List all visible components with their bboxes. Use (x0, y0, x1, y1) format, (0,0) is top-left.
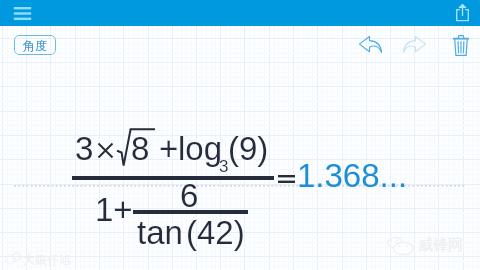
staticText: (9) (228, 130, 269, 167)
button[interactable]: Delete (453, 35, 469, 56)
staticText: 6 (180, 177, 199, 214)
staticText: 3 (219, 157, 229, 176)
button[interactable]: Menu (7, 0, 37, 26)
staticText: tan (137, 214, 183, 251)
button[interactable]: 角度 (14, 35, 56, 55)
button[interactable]: Redo (403, 36, 426, 53)
staticText: + (159, 130, 179, 167)
staticText: 威锋网 (418, 236, 463, 255)
staticText: log (178, 130, 223, 167)
button[interactable]: Share (451, 0, 475, 26)
staticText: (42) (186, 214, 245, 251)
staticText: 8 (131, 130, 150, 167)
button[interactable]: Undo (359, 36, 382, 53)
staticText: 角度 (23, 38, 47, 53)
staticText: 大眼仔旭 (23, 252, 71, 267)
staticText: 3 (75, 130, 94, 167)
staticText: 1.368... (297, 157, 408, 194)
staticText: 1+ (95, 191, 133, 228)
